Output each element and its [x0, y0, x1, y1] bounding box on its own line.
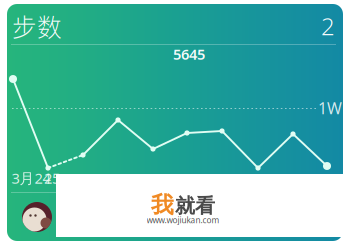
staticText: 2 — [321, 10, 335, 42]
button[interactable]: 步数 — [12, 8, 62, 44]
staticText: 就看 — [175, 193, 215, 218]
staticText: 1W — [318, 97, 342, 119]
staticText: 3月24 — [11, 168, 50, 188]
staticText: 我 — [151, 191, 174, 219]
staticText: 步数 — [12, 8, 62, 44]
button[interactable]: Profile — [22, 202, 52, 232]
staticText: 25 — [44, 168, 60, 188]
staticText: 5645 — [173, 44, 205, 64]
staticText: www.wojiukan.com — [146, 214, 219, 226]
